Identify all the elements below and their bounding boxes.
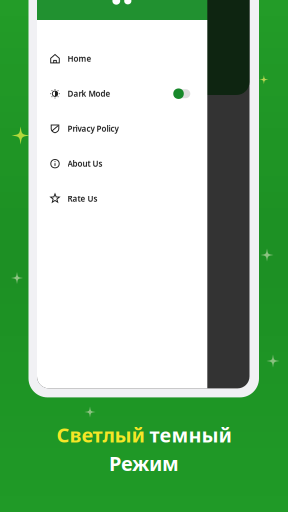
button[interactable]: About Us	[37, 146, 207, 181]
button[interactable]: Dark Mode	[37, 76, 207, 111]
staticText: Privacy Policy	[67, 123, 118, 134]
staticText: Dark Mode	[67, 88, 110, 99]
staticText: Rate Us	[67, 193, 97, 204]
staticText: Home	[67, 53, 91, 64]
staticText: Режим	[109, 450, 179, 477]
staticText: Светлый	[56, 421, 144, 448]
button[interactable]: Home	[37, 41, 207, 76]
button[interactable]: Rate Us	[37, 181, 207, 216]
staticText: темный	[149, 421, 231, 448]
staticText: About Us	[67, 158, 102, 169]
button[interactable]: Privacy Policy	[37, 111, 207, 146]
